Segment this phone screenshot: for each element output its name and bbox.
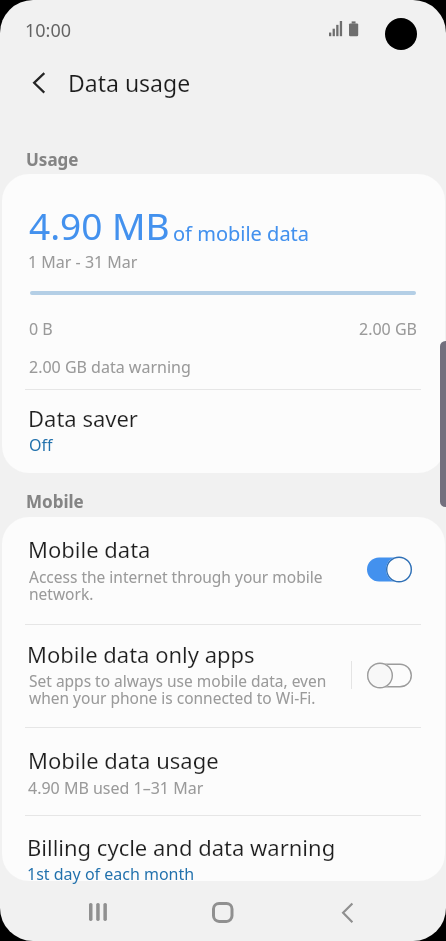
staticText: Set apps to always use mobile data, even… <box>29 670 327 708</box>
staticText: Data usage <box>68 67 191 98</box>
staticText: of mobile data <box>173 220 310 247</box>
staticText: Mobile data <box>28 534 151 564</box>
button[interactable] <box>2 728 445 815</box>
staticText: Access the internet through your mobile … <box>29 566 323 604</box>
staticText: Off <box>29 434 53 456</box>
button[interactable]: Recent apps <box>50 881 148 941</box>
staticText: 4.90 MB used 1–31 Mar <box>28 777 204 799</box>
staticText: Mobile data usage <box>28 745 219 775</box>
button[interactable]: Mobile data only apps <box>367 662 412 689</box>
button[interactable] <box>2 816 445 881</box>
button[interactable]: Mobile data <box>367 556 412 583</box>
button[interactable]: Navigate up <box>15 59 63 107</box>
button[interactable]: Back <box>299 881 397 941</box>
button[interactable] <box>2 517 445 624</box>
staticText: 1 Mar - 31 Mar <box>28 251 138 273</box>
staticText: Data saver <box>28 403 138 433</box>
button[interactable] <box>2 625 445 727</box>
button[interactable]: Home <box>174 881 272 941</box>
staticText: 1st day of each month <box>27 863 195 885</box>
staticText: Mobile data only apps <box>27 639 255 669</box>
staticText: Billing cycle and data warning <box>27 832 336 862</box>
button[interactable] <box>2 390 445 473</box>
staticText: 10:00 <box>25 18 72 43</box>
staticText: 2.00 GB <box>359 318 417 340</box>
staticText: 4.90 MB <box>29 200 170 250</box>
staticText: Mobile <box>26 490 84 513</box>
staticText: 0 B <box>29 318 53 340</box>
staticText: 2.00 GB data warning <box>29 356 191 378</box>
staticText: Usage <box>26 148 79 171</box>
